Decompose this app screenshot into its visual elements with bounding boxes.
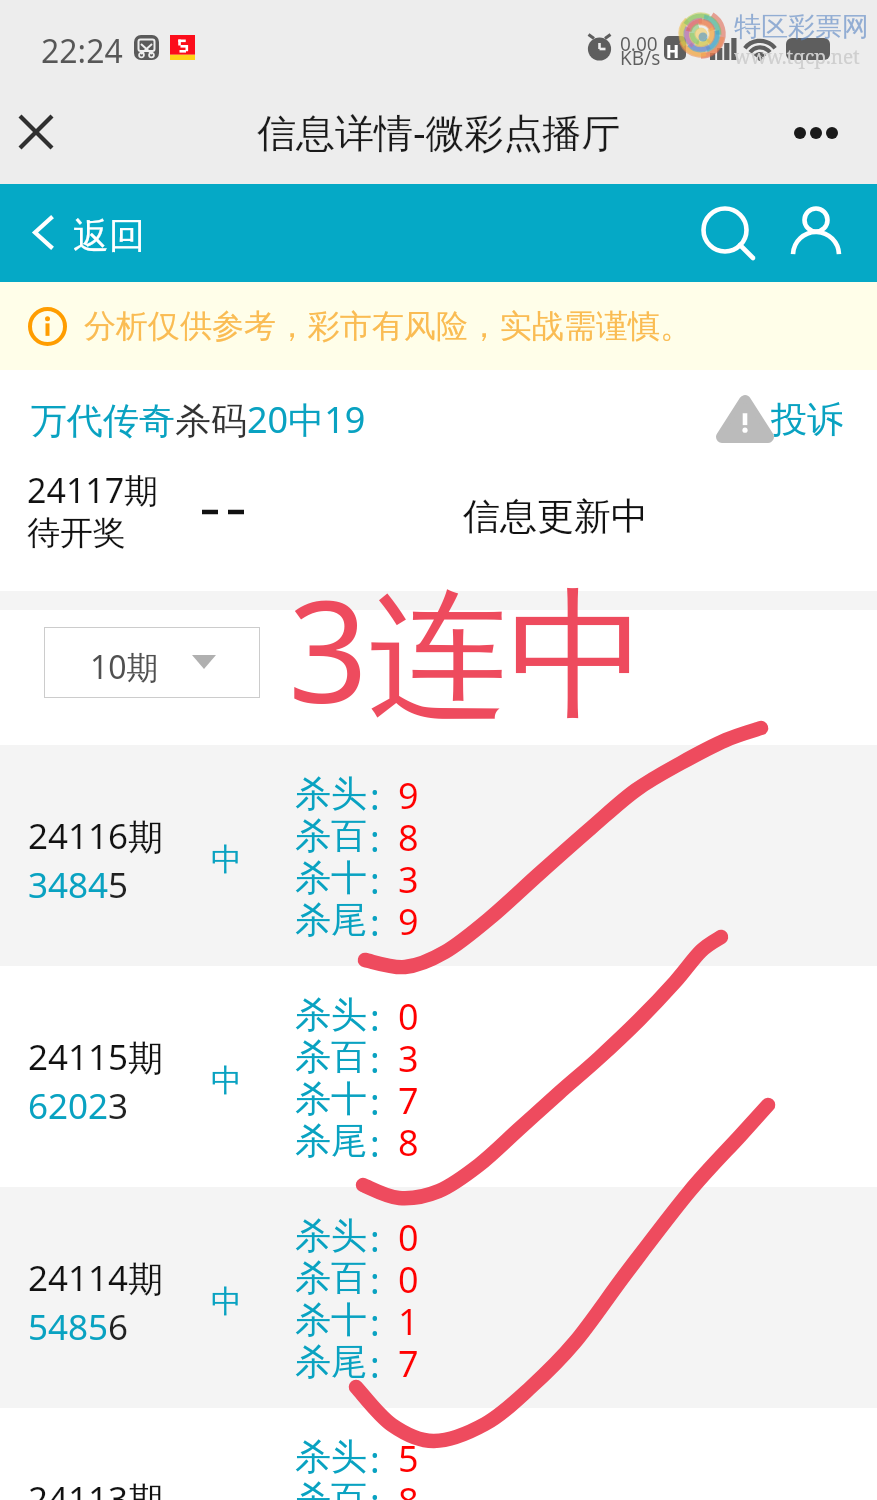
staticText: 待开奖 bbox=[27, 512, 126, 554]
button[interactable]: 10期 bbox=[44, 627, 260, 698]
staticText: 杀尾 bbox=[295, 897, 367, 942]
staticText: 9 bbox=[398, 897, 419, 946]
staticText: 杀十 bbox=[295, 1297, 367, 1342]
staticText: 8 bbox=[398, 813, 419, 862]
button[interactable]: 返回 bbox=[12, 194, 172, 272]
staticText: 9 bbox=[398, 771, 419, 820]
staticText: 54856 bbox=[28, 1303, 129, 1351]
staticText: 特区彩票网 bbox=[734, 10, 869, 44]
staticText: 24114期 bbox=[28, 1254, 164, 1302]
staticText: : bbox=[370, 898, 380, 947]
staticText: : bbox=[370, 772, 380, 821]
staticText: : bbox=[370, 993, 380, 1042]
staticText: 杀十 bbox=[295, 855, 367, 900]
button[interactable]: 24114期 bbox=[0, 1187, 877, 1408]
staticText: 杀头 bbox=[295, 771, 367, 816]
staticText: : bbox=[370, 1119, 380, 1168]
staticText: : bbox=[370, 1435, 380, 1484]
staticText: 杀头 bbox=[295, 1434, 367, 1479]
staticText: 0.00 bbox=[620, 31, 658, 57]
staticText: 1 bbox=[398, 1297, 419, 1346]
staticText: 24117期 bbox=[27, 467, 159, 513]
staticText: 34845 bbox=[28, 861, 129, 909]
button[interactable]: Account bbox=[780, 194, 852, 266]
staticText: 5 bbox=[398, 1434, 419, 1483]
staticText: 3连中 bbox=[288, 553, 649, 744]
staticText: 杀头 bbox=[295, 1213, 367, 1258]
staticText: 0 bbox=[398, 1213, 419, 1262]
staticText: 返回 bbox=[73, 213, 145, 258]
staticText: 杀十 bbox=[295, 1076, 367, 1121]
staticText: 7 bbox=[398, 1339, 419, 1388]
staticText: 8 bbox=[398, 1476, 419, 1500]
staticText: : bbox=[370, 1477, 380, 1500]
staticText: 杀百 bbox=[295, 813, 367, 858]
staticText: : bbox=[370, 1298, 380, 1347]
staticText: 杀尾 bbox=[295, 1118, 367, 1163]
staticText: 22:24 bbox=[41, 29, 123, 73]
staticText: : bbox=[370, 856, 380, 905]
staticText: 杀百 bbox=[295, 1476, 367, 1500]
staticText: 3 bbox=[398, 855, 419, 904]
button[interactable]: 投诉 bbox=[712, 390, 852, 450]
button[interactable]: 24113期 bbox=[0, 1408, 877, 1500]
staticText: 信息更新中 bbox=[463, 493, 648, 540]
button[interactable]: Search bbox=[689, 194, 761, 266]
staticText: www.tqcp.net bbox=[734, 44, 860, 70]
button[interactable]: 24116期 bbox=[0, 745, 877, 966]
staticText: 中 bbox=[211, 840, 242, 879]
staticText: : bbox=[370, 1214, 380, 1263]
staticText: HD bbox=[666, 40, 688, 64]
staticText: 7 bbox=[398, 1076, 419, 1125]
staticText: 8 bbox=[398, 1118, 419, 1167]
staticText: 0 bbox=[398, 1255, 419, 1304]
staticText: 万代传奇杀码20中19 bbox=[31, 395, 366, 444]
staticText: 24113期 bbox=[28, 1475, 164, 1500]
button[interactable]: Close bbox=[4, 100, 68, 164]
staticText: : bbox=[370, 1077, 380, 1126]
staticText: 杀头 bbox=[295, 992, 367, 1037]
staticText: 24115期 bbox=[28, 1033, 164, 1081]
staticText: 中 bbox=[211, 1061, 242, 1100]
staticText: 10期 bbox=[90, 645, 159, 689]
staticText: : bbox=[370, 1340, 380, 1389]
staticText: 0 bbox=[398, 992, 419, 1041]
staticText: 信息详情-微彩点播厅 bbox=[257, 105, 621, 158]
staticText: 分析仅供参考，彩市有风险，实战需谨慎。 bbox=[84, 306, 692, 346]
button[interactable]: 24115期 bbox=[0, 966, 877, 1187]
staticText: : bbox=[370, 1035, 380, 1084]
staticText: 杀百 bbox=[295, 1034, 367, 1079]
staticText: : bbox=[370, 814, 380, 863]
staticText: 杀百 bbox=[295, 1255, 367, 1300]
staticText: 3 bbox=[398, 1034, 419, 1083]
staticText: 62023 bbox=[28, 1082, 129, 1130]
staticText: 24116期 bbox=[28, 812, 164, 860]
staticText: KB/s bbox=[620, 45, 661, 71]
button[interactable]: More options bbox=[778, 100, 854, 176]
staticText: 中 bbox=[211, 1282, 242, 1321]
staticText: 杀尾 bbox=[295, 1339, 367, 1384]
staticText: 投诉 bbox=[771, 397, 843, 442]
staticText: : bbox=[370, 1256, 380, 1305]
